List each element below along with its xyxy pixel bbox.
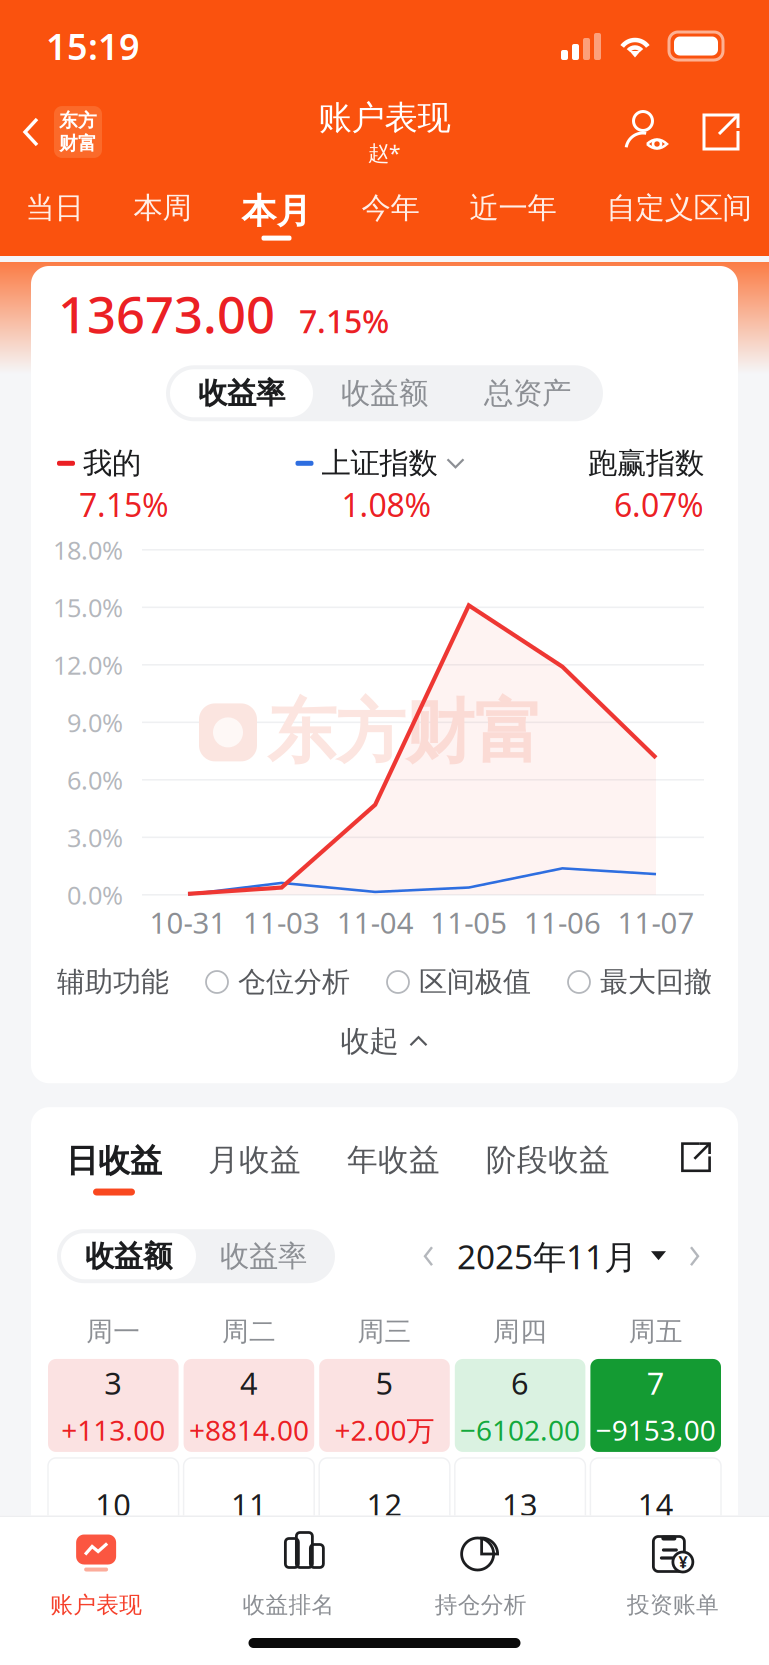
staticText: 11-03 (243, 903, 320, 942)
button[interactable]: 本周 (108, 172, 216, 256)
button[interactable]: 收益排名 (192, 1517, 384, 1621)
button[interactable]: 分享 (685, 94, 769, 170)
staticText: −6102.00 (460, 1411, 580, 1448)
staticText: 收益率 (220, 1238, 307, 1274)
button[interactable]: 7 (590, 1359, 721, 1452)
button[interactable]: 上一月 (415, 1241, 443, 1271)
staticText: 周五 (629, 1315, 683, 1348)
staticText: 10-31 (149, 903, 226, 942)
button[interactable]: 收益额 (313, 369, 456, 417)
staticText: 6.0% (67, 763, 123, 797)
button[interactable]: 账户表现 (0, 1517, 192, 1621)
staticText: 我的 (83, 445, 141, 481)
button[interactable]: 收益率 (170, 369, 313, 417)
staticText: 2025年11月 (457, 1234, 637, 1278)
button[interactable]: 10 (48, 1458, 179, 1551)
staticText: 11-06 (524, 903, 601, 942)
button[interactable]: 仓位分析 (206, 965, 350, 999)
staticText: 收益率 (198, 375, 285, 411)
staticText: 14 (638, 1484, 674, 1525)
button[interactable]: 5 (319, 1359, 450, 1452)
staticText: 年收益 (347, 1141, 440, 1179)
button[interactable]: 12 (319, 1458, 450, 1551)
staticText: 财富 (59, 132, 97, 155)
button[interactable]: 当日 (0, 172, 108, 256)
button[interactable]: 分享收益 (680, 1141, 738, 1215)
staticText: 6.07% (614, 483, 704, 526)
button[interactable]: 月收益 (185, 1141, 324, 1215)
staticText: 收益额 (341, 375, 428, 411)
staticText: 本月 (241, 190, 311, 233)
staticText: 日收益 (66, 1141, 162, 1180)
button[interactable]: 14 (590, 1458, 721, 1551)
button[interactable]: 本月 (216, 172, 336, 256)
staticText: 周三 (357, 1315, 411, 1348)
staticText: 10 (95, 1484, 131, 1525)
staticText: 阶段收益 (486, 1141, 610, 1179)
staticText: 投资账单 (627, 1591, 719, 1619)
staticText: 收益额 (85, 1238, 172, 1274)
button[interactable]: 持仓分析 (384, 1517, 577, 1621)
staticText: 7.15% (299, 300, 389, 342)
staticText: 辅助功能 (57, 965, 169, 999)
button[interactable]: 下一月 (680, 1241, 708, 1271)
staticText: 12 (366, 1484, 402, 1525)
staticText: 6 (511, 1362, 529, 1403)
staticText: 最大回撤 (600, 965, 712, 999)
staticText: +8814.00 (189, 1411, 309, 1448)
button[interactable]: 日收益 (43, 1141, 185, 1215)
button[interactable]: 今年 (336, 172, 444, 256)
staticText: 11-05 (430, 903, 507, 942)
staticText: 12.0% (53, 648, 123, 682)
staticText: 3 (104, 1362, 122, 1403)
button[interactable]: 近一年 (444, 172, 581, 256)
staticText: 自定义区间 (606, 190, 751, 226)
button[interactable]: 阶段收益 (463, 1141, 633, 1215)
staticText: 本周 (133, 190, 191, 226)
button[interactable]: 区间极值 (387, 965, 531, 999)
staticText: 东方 (59, 109, 97, 132)
staticText: 5 (375, 1362, 393, 1403)
button[interactable]: 3 (48, 1359, 179, 1452)
staticText: 持仓分析 (435, 1591, 527, 1619)
button[interactable]: 总资产 (456, 369, 599, 417)
staticText: 3.0% (67, 820, 123, 854)
button[interactable]: 收益率 (196, 1233, 331, 1279)
button[interactable]: 收起 (31, 999, 738, 1083)
button[interactable]: ¥ (577, 1517, 769, 1621)
staticText: 收起 (340, 1023, 398, 1059)
staticText: 9.0% (67, 705, 123, 739)
button[interactable]: 13 (455, 1458, 585, 1551)
button[interactable]: 11 (184, 1458, 314, 1551)
staticText: 11-04 (337, 903, 414, 942)
button[interactable]: 年收益 (324, 1141, 463, 1215)
staticText: 0.0% (67, 878, 123, 912)
staticText: 赵* (368, 138, 401, 167)
staticText: −9153.00 (596, 1411, 716, 1448)
staticText: 周一 (86, 1315, 140, 1348)
button[interactable]: 自定义区间 (581, 172, 769, 256)
button[interactable]: 返回东方财富 (0, 94, 112, 170)
staticText: 11-07 (617, 903, 694, 942)
staticText: 15:19 (46, 22, 140, 70)
button[interactable]: 收益额 (61, 1233, 196, 1279)
staticText: 账户表现 (50, 1591, 142, 1619)
staticText: 今年 (361, 190, 419, 226)
button[interactable]: 客户信息 (611, 94, 685, 170)
staticText: 收益排名 (242, 1591, 334, 1619)
button[interactable]: 4 (184, 1359, 314, 1452)
staticText: 月收益 (208, 1141, 301, 1179)
staticText: 区间极值 (419, 965, 531, 999)
staticText: 当日 (25, 190, 83, 226)
staticText: 跑赢指数 (588, 445, 704, 481)
staticText: +2.00万 (334, 1411, 434, 1448)
staticText: 周二 (222, 1315, 276, 1348)
staticText: 总资产 (484, 375, 571, 411)
button[interactable]: 6 (455, 1359, 585, 1452)
staticText: 近一年 (469, 190, 556, 226)
staticText: 1.08% (341, 483, 431, 526)
button[interactable]: 最大回撤 (568, 965, 712, 999)
staticText: 18.0% (53, 533, 123, 567)
staticText: 仓位分析 (238, 965, 350, 999)
staticText: 上证指数 (321, 445, 437, 481)
